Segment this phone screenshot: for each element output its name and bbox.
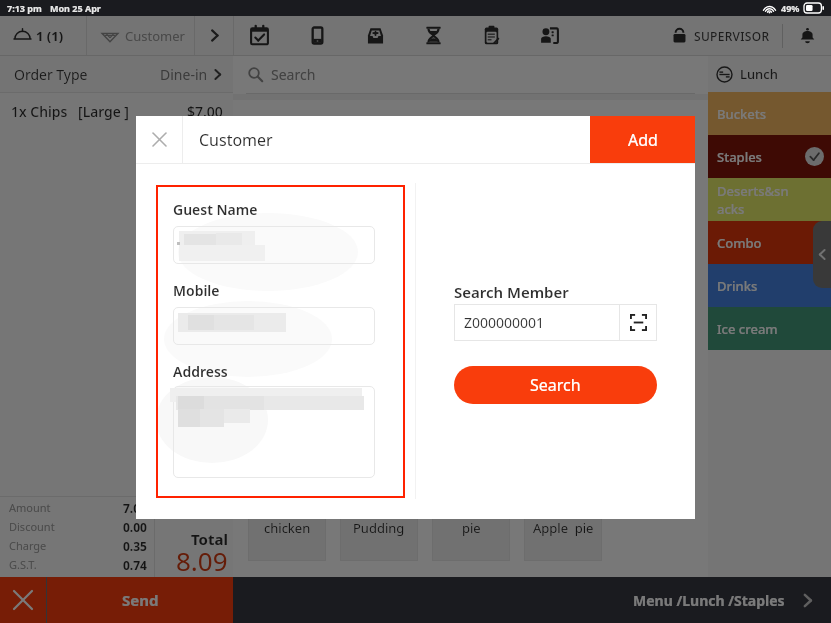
button[interactable]: contact [524,16,582,55]
button[interactable]: chicken [248,518,326,561]
button[interactable]: Pudding [340,518,418,561]
staticText: Buckets [717,105,824,123]
staticText: 8.09 [176,543,228,577]
staticText: Discount [9,519,55,534]
staticText: Add [628,129,658,151]
button[interactable]: Send [47,577,233,623]
button[interactable]: Customer [101,16,194,55]
button[interactable]: Notifications [783,16,831,55]
button[interactable]: Buckets [717,92,824,135]
staticText: SUPERVISOR [694,28,770,44]
staticText: Amount [9,500,51,515]
staticText: $7.00 [187,102,223,121]
staticText: Combo [717,234,824,252]
staticText: Mobile [173,281,220,300]
staticText: Address [173,362,228,381]
button[interactable]: Staples [717,135,824,178]
staticText: Total [191,529,228,549]
button[interactable]: Deserts&sn acks [717,178,824,221]
staticText: Staples [717,148,805,166]
staticText: Deserts&sn acks [717,182,824,218]
staticText: 0.35 [123,538,147,554]
staticText: Apple pie [533,519,594,537]
button[interactable]: Drinks [717,264,824,307]
button[interactable]: calendar [234,16,292,55]
staticText: Menu /Lunch /Staples [633,591,785,610]
button[interactable]: Scan barcode [620,304,657,341]
button[interactable]: phone [292,16,350,55]
staticText: Drinks [717,277,824,295]
staticText: 1x Chips [Large ] [11,102,129,121]
button[interactable]: cash [350,16,408,55]
staticText: 0.74 [123,557,147,573]
button[interactable]: Combo [717,221,824,264]
staticText: Order Type [14,65,88,84]
staticText: Dine-in [160,65,208,84]
button[interactable]: Search [248,56,708,93]
button[interactable]: pie [432,518,510,561]
staticText: Customer [125,27,185,45]
button[interactable]: Next step [195,16,233,55]
staticText: Lunch [740,65,778,83]
staticText: Pudding [353,519,405,537]
staticText: Search [271,65,316,84]
staticText: Send [122,590,159,610]
staticText: pie [462,519,481,537]
staticText: Z000000001 [464,313,619,332]
button[interactable]: 1 (1) [14,16,86,55]
staticText: Search [530,374,581,396]
button[interactable]: Collapse panel [813,221,831,288]
staticText: G.S.T. [9,557,37,572]
staticText: Charge [9,538,47,553]
staticText: Guest Name [173,200,258,219]
staticText: 49% [781,2,800,14]
button[interactable]: Apple pie [524,518,602,561]
button[interactable]: Cancel order [0,577,46,623]
staticText: Search Member [454,282,569,302]
button[interactable]: Menu /Lunch /Staples [633,577,817,623]
staticText: Mon 25 Apr [50,2,101,14]
staticText: Customer [199,129,273,151]
staticText: Ice cream [717,320,824,338]
button[interactable]: hourglass [408,16,466,55]
staticText: 7.00 [123,500,147,516]
staticText: 0.00 [123,519,147,535]
staticText: 7:13 pm [7,2,42,14]
staticText: chicken [264,519,311,537]
button[interactable]: Ice cream [717,307,824,350]
button[interactable]: SUPERVISOR [673,16,770,55]
button[interactable]: Lunch [716,56,831,92]
button[interactable]: Search [454,366,657,404]
button[interactable]: clipboard [466,16,524,55]
button[interactable]: Order Type [14,56,225,92]
button[interactable]: Close [136,116,182,163]
staticText: 1 (1) [36,27,64,45]
button[interactable]: Add [590,116,695,163]
